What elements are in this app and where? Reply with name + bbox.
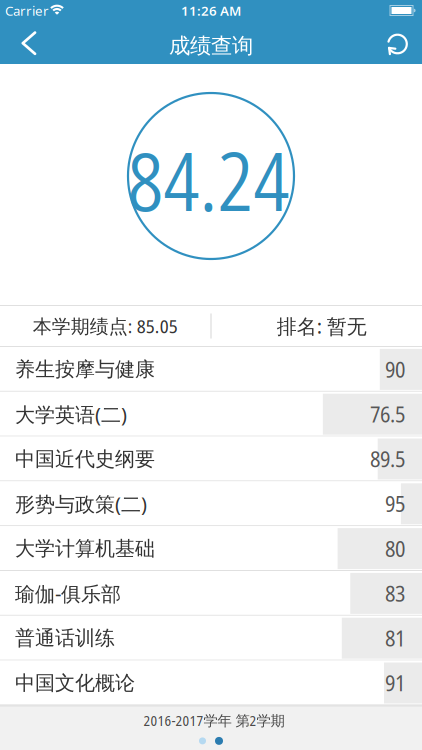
staticText: 成绩查询 <box>169 33 253 59</box>
staticText: 形势与政策(二) <box>15 490 147 517</box>
staticText: 81 <box>385 624 405 653</box>
staticText: 排名: 暂无 <box>277 313 367 339</box>
button[interactable]: 养生按摩与健康 <box>0 347 422 392</box>
staticText: 76.5 <box>370 400 405 429</box>
staticText: Carrier <box>5 2 49 19</box>
staticText: 中国文化概论 <box>15 671 135 695</box>
staticText: 大学英语(二) <box>15 401 127 427</box>
staticText: 11:26 AM <box>181 2 241 19</box>
staticText: 84.24 <box>127 125 289 234</box>
staticText: 95 <box>385 489 405 518</box>
staticText: 本学期绩点: 85.05 <box>33 313 178 339</box>
staticText: 养生按摩与健康 <box>15 357 155 382</box>
button[interactable]: 形势与政策(二) <box>0 481 422 526</box>
staticText: 中国近代史纲要 <box>15 447 155 471</box>
button[interactable]: 瑜伽-俱乐部 <box>0 571 422 616</box>
staticText: 83 <box>385 579 405 608</box>
staticText: 91 <box>385 668 405 698</box>
staticText: 2016-2017学年 第2学期 <box>143 711 284 730</box>
button[interactable]: 中国近代史纲要 <box>0 437 422 481</box>
staticText: 90 <box>385 355 405 384</box>
button[interactable]: 大学计算机基础 <box>0 526 422 571</box>
button[interactable]: 大学英语(二) <box>0 392 422 437</box>
button[interactable]: 普通话训练 <box>0 616 422 661</box>
staticText: 89.5 <box>370 444 405 474</box>
button[interactable]: Back <box>8 22 48 64</box>
staticText: 瑜伽-俱乐部 <box>15 580 121 607</box>
staticText: 大学计算机基础 <box>15 536 155 561</box>
staticText: 80 <box>385 534 405 563</box>
staticText: 普通话训练 <box>15 626 115 650</box>
button[interactable]: 中国文化概论 <box>0 661 422 705</box>
button[interactable]: Refresh <box>377 22 417 64</box>
